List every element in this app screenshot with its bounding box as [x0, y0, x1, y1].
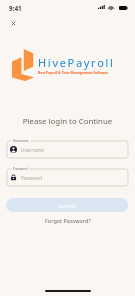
- button[interactable]: Forgot Password?: [43, 215, 93, 226]
- staticText: Username: [21, 147, 44, 153]
- staticText: HivePayroll: [38, 55, 115, 70]
- button[interactable]: Submit: [6, 198, 128, 212]
- staticText: Password: [21, 175, 43, 181]
- staticText: Submit: [58, 202, 76, 209]
- button[interactable]: Username: [7, 141, 128, 158]
- staticText: Please login to Continue: [0, 116, 135, 127]
- button[interactable]: Close: [5, 15, 22, 32]
- staticText: Username: [13, 139, 29, 143]
- staticText: 9:41: [9, 4, 22, 13]
- button[interactable]: Password: [7, 169, 128, 186]
- staticText: Password: [13, 167, 28, 171]
- staticText: Best Payroll & Time Management Software: [38, 70, 109, 74]
